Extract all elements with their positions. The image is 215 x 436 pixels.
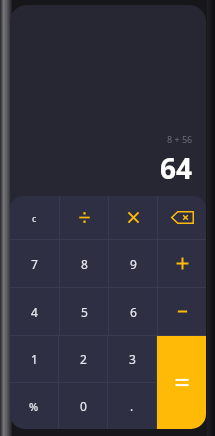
staticText: % [29, 399, 39, 414]
button[interactable]: Equals [157, 336, 206, 429]
staticText: . [130, 398, 134, 414]
button[interactable]: 5 [60, 288, 108, 335]
button[interactable]: 4 [10, 288, 59, 335]
staticText: c [32, 212, 37, 224]
button[interactable]: 0 [59, 383, 107, 429]
button[interactable]: 1 [10, 336, 58, 382]
button[interactable]: 2 [59, 336, 107, 382]
staticText: 8 [81, 256, 88, 272]
staticText: 1 [31, 351, 38, 367]
button[interactable]: Operator [158, 288, 206, 335]
staticText: 2 [80, 351, 87, 367]
button[interactable]: 8 [60, 240, 108, 287]
button[interactable]: Clear [10, 196, 59, 239]
staticText: 5 [81, 304, 88, 320]
staticText: 7 [31, 256, 38, 272]
button[interactable]: Decimal point [108, 383, 156, 429]
button[interactable]: 7 [10, 240, 59, 287]
button[interactable]: Divide [60, 196, 108, 239]
button[interactable]: 3 [108, 336, 156, 382]
staticText: 6 [130, 304, 137, 320]
staticText: 4 [31, 304, 38, 320]
button[interactable]: 6 [109, 288, 157, 335]
staticText: 9 [130, 256, 137, 272]
button[interactable]: Multiply [109, 196, 157, 239]
staticText: 8 + 56 [167, 133, 193, 145]
staticText: 64 [160, 149, 193, 187]
staticText: 0 [80, 398, 87, 414]
button[interactable]: Backspace [158, 196, 206, 239]
button[interactable]: Operator [158, 240, 206, 287]
button[interactable]: Percent [10, 383, 58, 429]
staticText: 3 [129, 351, 136, 367]
button[interactable]: 9 [109, 240, 157, 287]
